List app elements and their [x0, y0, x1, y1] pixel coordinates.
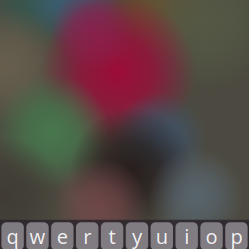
- button[interactable]: r: [76, 222, 98, 249]
- staticText: e: [57, 223, 68, 249]
- button[interactable]: w: [26, 222, 49, 249]
- staticText: o: [206, 223, 218, 249]
- staticText: y: [132, 223, 142, 249]
- staticText: u: [156, 223, 168, 249]
- button[interactable]: o: [200, 222, 223, 249]
- button[interactable]: u: [151, 222, 173, 249]
- staticText: i: [184, 223, 189, 249]
- button[interactable]: t: [101, 222, 123, 249]
- staticText: t: [109, 223, 116, 249]
- button[interactable]: q: [1, 222, 24, 249]
- button[interactable]: i: [175, 222, 198, 249]
- button[interactable]: p: [225, 222, 248, 249]
- staticText: q: [7, 223, 19, 249]
- staticText: w: [29, 223, 45, 249]
- button[interactable]: e: [51, 222, 73, 249]
- button[interactable]: y: [126, 222, 148, 249]
- staticText: p: [230, 223, 242, 249]
- staticText: r: [83, 223, 91, 249]
